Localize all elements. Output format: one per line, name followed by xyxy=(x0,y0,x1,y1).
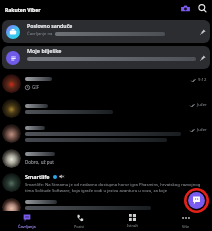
button[interactable]: Pozivi xyxy=(53,211,106,231)
button[interactable]: New chat xyxy=(184,188,209,213)
staticText: Više xyxy=(182,224,190,229)
button[interactable]: Čavrljanja xyxy=(0,211,53,231)
button[interactable]: GIF xyxy=(0,71,212,96)
button[interactable]: Poslovno sanduče xyxy=(2,20,210,43)
button[interactable] xyxy=(0,195,212,220)
staticText: Smartlife xyxy=(25,173,50,180)
button[interactable]: Dobro, už put xyxy=(0,146,212,170)
staticText: Čavrljanja xyxy=(18,224,36,229)
staticText: Čavrljanje na xyxy=(27,31,53,37)
staticText: GIF xyxy=(32,84,40,90)
staticText: Jučer xyxy=(197,127,207,133)
button[interactable]: Jučer xyxy=(0,96,212,121)
button[interactable]: Više xyxy=(159,211,212,231)
staticText: Smartlife: Na Streamu je od nedavno dost… xyxy=(25,182,208,193)
button[interactable]: Search xyxy=(197,3,208,14)
button[interactable]: Camera xyxy=(180,3,191,14)
staticText: 9:12 xyxy=(198,77,207,83)
button[interactable]: Istraži xyxy=(106,211,159,231)
button[interactable]: Moje bilješke xyxy=(2,46,210,69)
staticText: Moje bilješke xyxy=(27,47,62,54)
staticText: Poslovno sanduče xyxy=(27,22,73,29)
button[interactable]: Smartlife xyxy=(0,170,212,195)
staticText: Dobro, už put xyxy=(25,159,54,165)
staticText: Pozivi xyxy=(74,224,85,229)
button[interactable]: Jučer xyxy=(0,121,212,146)
staticText: Istraži xyxy=(127,223,138,228)
staticText: Rakuten Viber xyxy=(5,7,41,14)
staticText: Jučer xyxy=(197,102,207,108)
